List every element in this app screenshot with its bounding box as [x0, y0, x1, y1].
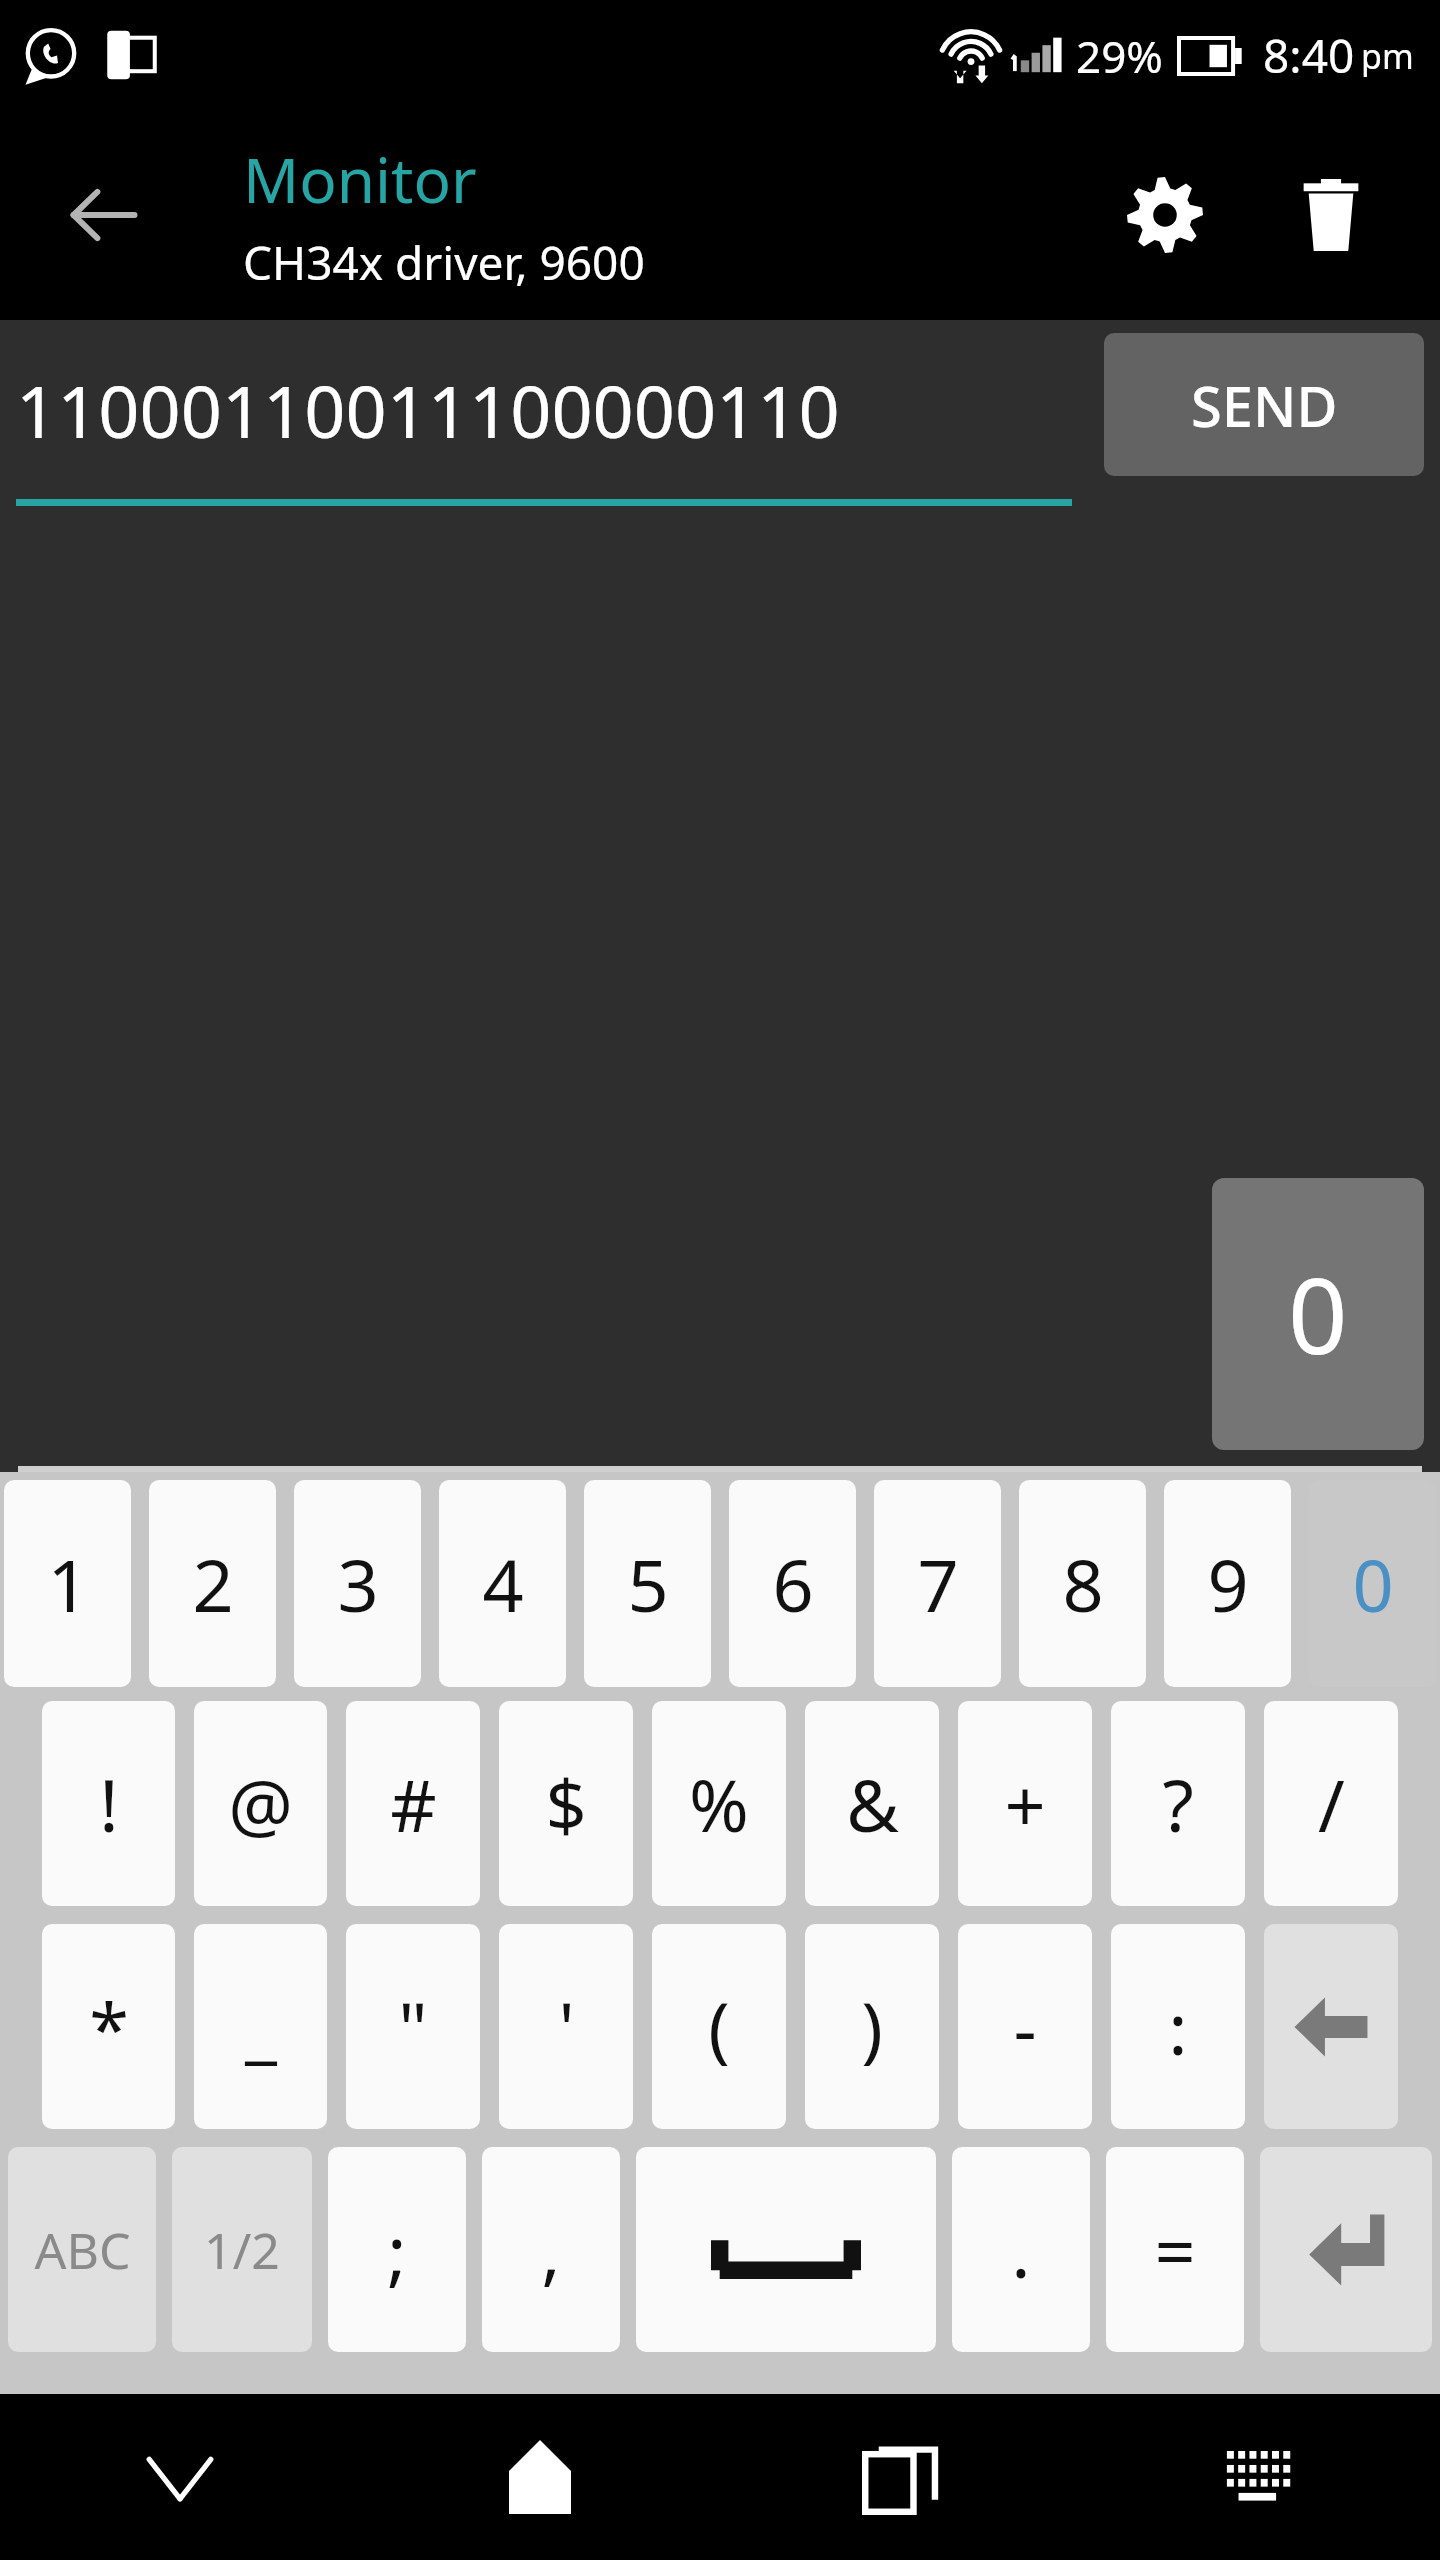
button[interactable]: $ [499, 1701, 633, 1906]
staticText: CH34x driver, 9600 [243, 231, 645, 294]
staticText: @ [228, 1755, 293, 1853]
staticText: * [89, 1978, 129, 2076]
staticText: 4 [482, 1535, 524, 1633]
staticText: 5 [627, 1535, 669, 1633]
staticText: = [1154, 2201, 1196, 2299]
staticText: ? [1162, 1755, 1194, 1853]
staticText: 1/2 [204, 2216, 280, 2284]
button[interactable]: Enter [1260, 2147, 1432, 2352]
staticText: Monitor [243, 137, 477, 221]
button[interactable]: # [346, 1701, 480, 1906]
staticText: 8:40 [1263, 24, 1355, 87]
staticText: 7 [917, 1535, 959, 1633]
button[interactable]: Switch keyboard [1080, 2394, 1440, 2560]
staticText: ! [99, 1755, 119, 1853]
staticText: # [390, 1755, 437, 1853]
button[interactable]: 3 [294, 1480, 421, 1687]
button[interactable]: ( [652, 1924, 786, 2129]
button[interactable]: 5 [584, 1480, 711, 1687]
button[interactable]: " [346, 1924, 480, 2129]
staticText: " [398, 1978, 428, 2076]
button[interactable]: Space [636, 2147, 936, 2352]
staticText: 2 [192, 1535, 234, 1633]
button[interactable]: . [952, 2147, 1090, 2352]
button[interactable]: Hide keyboard [0, 2394, 360, 2560]
staticText: ( [708, 1978, 730, 2076]
staticText: SEND [1191, 367, 1338, 443]
button[interactable]: = [1106, 2147, 1244, 2352]
button[interactable]: 7 [874, 1480, 1001, 1687]
staticText: , [541, 2201, 561, 2299]
button[interactable]: 4 [439, 1480, 566, 1687]
staticText: ' [558, 1978, 575, 2076]
button[interactable]: 0 [1309, 1480, 1436, 1687]
staticText: % [689, 1755, 749, 1853]
staticText: 8 [1062, 1535, 1104, 1633]
button[interactable]: ; [328, 2147, 466, 2352]
button[interactable]: Recent apps [720, 2394, 1080, 2560]
button[interactable]: Home [360, 2394, 720, 2560]
staticText: _ [245, 1978, 277, 2076]
button[interactable]: 6 [729, 1480, 856, 1687]
staticText: 9 [1207, 1535, 1249, 1633]
staticText: 11000110011100000110 [16, 361, 840, 459]
staticText: + [1004, 1755, 1046, 1853]
staticText: - [1013, 1978, 1037, 2076]
staticText: 0 [1352, 1535, 1394, 1633]
button[interactable]: % [652, 1701, 786, 1906]
staticText: ; [387, 2201, 407, 2299]
button[interactable]: * [42, 1924, 175, 2129]
staticText: ABC [34, 2216, 131, 2284]
button[interactable]: _ [194, 1924, 327, 2129]
button[interactable]: ? [1111, 1701, 1245, 1906]
staticText: 0 [1288, 1243, 1348, 1385]
button[interactable]: SEND [1104, 333, 1424, 476]
staticText: 3 [337, 1535, 379, 1633]
button[interactable]: : [1111, 1924, 1245, 2129]
button[interactable]: ! [42, 1701, 175, 1906]
button[interactable]: & [805, 1701, 939, 1906]
button[interactable]: ) [805, 1924, 939, 2129]
button[interactable]: Backspace [1264, 1924, 1398, 2129]
button[interactable]: / [1264, 1701, 1398, 1906]
button[interactable]: 8 [1019, 1480, 1146, 1687]
staticText: 1 [47, 1535, 89, 1633]
button[interactable]: 1 [4, 1480, 131, 1687]
button[interactable]: @ [194, 1701, 327, 1906]
staticText: / [1318, 1755, 1345, 1853]
button[interactable]: ABC [8, 2147, 156, 2352]
button[interactable]: Settings [1100, 150, 1230, 280]
staticText: 29% [1076, 26, 1163, 86]
staticText: ) [861, 1978, 883, 2076]
staticText: $ [545, 1755, 587, 1853]
button[interactable]: + [958, 1701, 1092, 1906]
button[interactable]: 2 [149, 1480, 276, 1687]
button[interactable]: ' [499, 1924, 633, 2129]
button[interactable]: 9 [1164, 1480, 1291, 1687]
button[interactable]: Delete [1266, 150, 1396, 280]
staticText: & [846, 1755, 899, 1853]
staticText: : [1168, 1978, 1188, 2076]
button[interactable]: 1/2 [172, 2147, 312, 2352]
staticText: 6 [772, 1535, 814, 1633]
button[interactable]: Back [28, 140, 178, 290]
staticText: pm [1361, 33, 1414, 79]
button[interactable]: - [958, 1924, 1092, 2129]
staticText: . [1011, 2201, 1031, 2299]
button[interactable]: , [482, 2147, 620, 2352]
